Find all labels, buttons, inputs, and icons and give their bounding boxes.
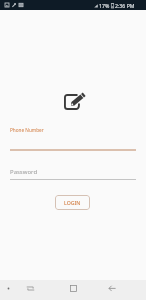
button[interactable]: LOGIN: [55, 195, 90, 210]
staticText: 17%: [99, 2, 110, 9]
staticText: 2:36 PM: [115, 2, 135, 9]
staticText: Phone Number: [10, 127, 44, 133]
button[interactable]: Password: [10, 168, 136, 176]
button[interactable]: Back: [105, 281, 119, 295]
button[interactable]: Menu: [2, 282, 15, 295]
staticText: Password: [10, 168, 38, 176]
staticText: LOGIN: [64, 199, 81, 206]
button[interactable]: Switch input method: [23, 281, 37, 295]
button[interactable]: Recent apps: [66, 281, 80, 295]
button[interactable]: Phone Number: [10, 127, 136, 133]
